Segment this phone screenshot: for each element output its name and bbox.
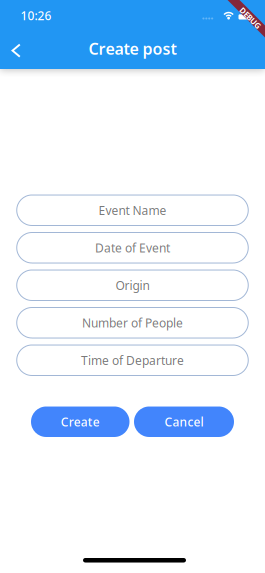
staticText: Origin [115, 277, 149, 293]
button[interactable]: Back [0, 28, 33, 69]
staticText: Time of Departure [81, 352, 184, 368]
button[interactable]: Create [31, 406, 129, 437]
staticText: DEBUG [237, 13, 264, 23]
staticText: Create post [88, 38, 176, 59]
staticText: Number of People [82, 315, 183, 331]
staticText: Date of Event [95, 240, 170, 256]
button[interactable]: Number of People [17, 307, 248, 338]
button[interactable]: Origin [17, 270, 248, 300]
staticText: Cancel [164, 414, 203, 430]
button[interactable]: Date of Event [17, 232, 248, 263]
staticText: Event Name [98, 202, 166, 218]
staticText: 10:26 [20, 8, 51, 23]
staticText: Create [61, 414, 100, 430]
button[interactable]: Time of Departure [17, 345, 248, 375]
button[interactable]: Event Name [17, 195, 248, 225]
button[interactable]: Cancel [134, 406, 234, 437]
